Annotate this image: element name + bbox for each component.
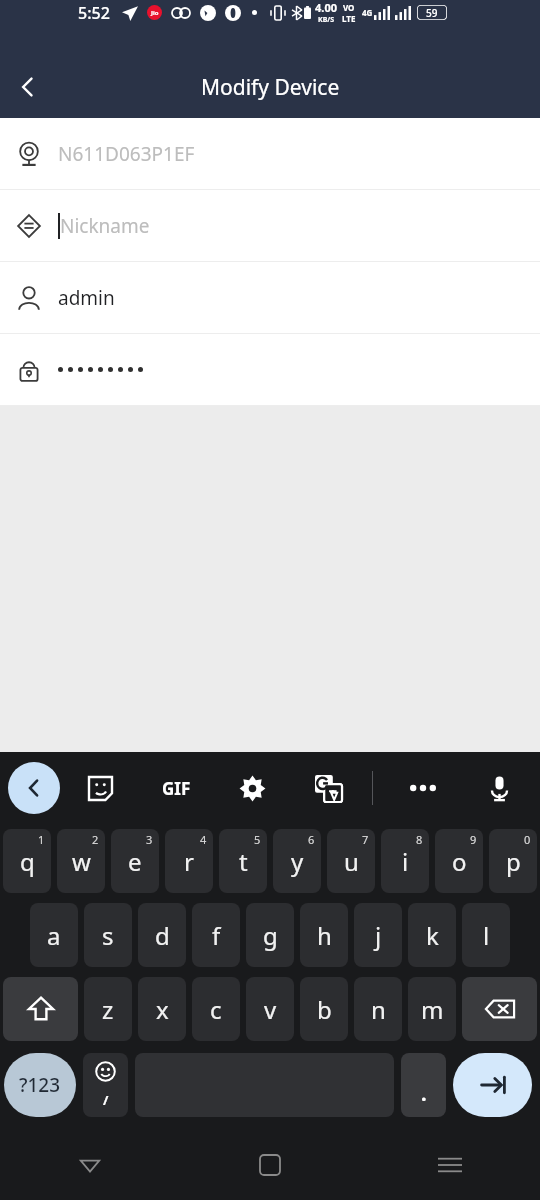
staticText: a bbox=[47, 919, 61, 952]
button[interactable]: Translate bbox=[304, 764, 352, 812]
button[interactable]: o bbox=[435, 829, 483, 893]
staticText: KB/S bbox=[318, 15, 335, 25]
button[interactable]: y bbox=[273, 829, 321, 893]
staticText: p bbox=[506, 845, 521, 878]
button[interactable]: a bbox=[30, 903, 78, 967]
button[interactable]: j bbox=[354, 903, 402, 967]
staticText: Nickname bbox=[60, 213, 150, 239]
button[interactable]: l bbox=[462, 903, 510, 967]
staticText: 59 bbox=[426, 6, 438, 20]
button[interactable] bbox=[0, 334, 540, 405]
button[interactable]: g bbox=[246, 903, 294, 967]
button[interactable]: GIF bbox=[152, 764, 200, 812]
staticText: w bbox=[72, 845, 91, 878]
staticText: j bbox=[375, 919, 382, 952]
staticText: Jio bbox=[151, 9, 159, 17]
staticText: 4G bbox=[362, 7, 373, 18]
button[interactable]: f bbox=[192, 903, 240, 967]
staticText: 2 bbox=[92, 832, 99, 847]
staticText: r bbox=[184, 845, 194, 878]
staticText: 5 bbox=[254, 832, 261, 847]
button[interactable]: q bbox=[3, 829, 51, 893]
staticText: 1 bbox=[38, 832, 45, 847]
staticText: n bbox=[371, 993, 386, 1026]
button[interactable]: Back bbox=[0, 1130, 180, 1200]
button[interactable]: Settings bbox=[228, 764, 276, 812]
staticText: 0 bbox=[524, 832, 531, 847]
staticText: 9 bbox=[470, 832, 477, 847]
staticText: GIF bbox=[162, 777, 191, 800]
button[interactable]: admin bbox=[0, 262, 540, 333]
button[interactable]: i bbox=[381, 829, 429, 893]
staticText: 5:52 bbox=[78, 2, 110, 24]
staticText: i bbox=[402, 845, 409, 878]
staticText: d bbox=[155, 919, 170, 952]
button[interactable]: c bbox=[192, 977, 240, 1041]
button[interactable]: w bbox=[57, 829, 105, 893]
button[interactable]: s bbox=[84, 903, 132, 967]
staticText: Modify Device bbox=[201, 73, 340, 102]
staticText: t bbox=[239, 845, 248, 878]
staticText: N611D063P1EF bbox=[58, 141, 195, 167]
button[interactable]: t bbox=[219, 829, 267, 893]
staticText: l bbox=[483, 919, 490, 952]
button[interactable]: . bbox=[401, 1053, 446, 1117]
staticText: q bbox=[20, 845, 35, 878]
button[interactable]: v bbox=[246, 977, 294, 1041]
staticText: ?123 bbox=[19, 1072, 61, 1098]
staticText: o bbox=[452, 845, 467, 878]
button[interactable]: Recent apps bbox=[360, 1130, 540, 1200]
staticText: 3 bbox=[146, 832, 153, 847]
button[interactable]: h bbox=[300, 903, 348, 967]
button[interactable]: r bbox=[165, 829, 213, 893]
button[interactable]: Home bbox=[180, 1130, 360, 1200]
staticText: admin bbox=[58, 285, 115, 311]
staticText: b bbox=[317, 993, 332, 1026]
staticText: VO bbox=[343, 2, 355, 13]
staticText: e bbox=[128, 845, 142, 878]
button[interactable]: z bbox=[84, 977, 132, 1041]
button[interactable]: ?123 bbox=[4, 1053, 76, 1117]
button[interactable]: Stickers bbox=[76, 764, 124, 812]
button[interactable]: n bbox=[354, 977, 402, 1041]
staticText: s bbox=[102, 919, 114, 952]
button[interactable]: Next field bbox=[453, 1053, 532, 1117]
staticText: z bbox=[102, 993, 114, 1026]
staticText: / bbox=[103, 1091, 109, 1109]
button[interactable]: More options bbox=[399, 764, 447, 812]
staticText: u bbox=[344, 845, 359, 878]
staticText: m bbox=[421, 993, 444, 1026]
staticText: 6 bbox=[308, 832, 315, 847]
staticText: k bbox=[426, 919, 439, 952]
button[interactable]: Shift bbox=[3, 977, 78, 1041]
button[interactable]: Nickname bbox=[0, 190, 540, 261]
staticText: 4 bbox=[200, 832, 207, 847]
staticText: 4.00 bbox=[315, 0, 337, 15]
button[interactable]: x bbox=[138, 977, 186, 1041]
staticText: LTE bbox=[342, 13, 356, 24]
staticText: 7 bbox=[362, 832, 369, 847]
staticText: c bbox=[210, 993, 222, 1026]
staticText: v bbox=[264, 993, 277, 1026]
button[interactable]: Back bbox=[0, 59, 56, 115]
button[interactable]: Backspace bbox=[462, 977, 537, 1041]
button[interactable]: m bbox=[408, 977, 456, 1041]
staticText: h bbox=[317, 919, 332, 952]
button[interactable]: Emoji bbox=[83, 1053, 128, 1117]
staticText: 8 bbox=[416, 832, 423, 847]
button[interactable]: N611D063P1EF bbox=[0, 118, 540, 189]
staticText: g bbox=[263, 919, 278, 952]
button[interactable]: u bbox=[327, 829, 375, 893]
button[interactable]: p bbox=[489, 829, 537, 893]
button[interactable]: e bbox=[111, 829, 159, 893]
button[interactable]: b bbox=[300, 977, 348, 1041]
button[interactable]: d bbox=[138, 903, 186, 967]
button[interactable]: k bbox=[408, 903, 456, 967]
button[interactable]: Close toolbar bbox=[8, 762, 60, 814]
staticText: f bbox=[212, 919, 221, 952]
staticText: x bbox=[156, 993, 169, 1026]
staticText: y bbox=[291, 845, 304, 878]
button[interactable]: Voice input bbox=[475, 764, 523, 812]
staticText: . bbox=[421, 1080, 427, 1107]
